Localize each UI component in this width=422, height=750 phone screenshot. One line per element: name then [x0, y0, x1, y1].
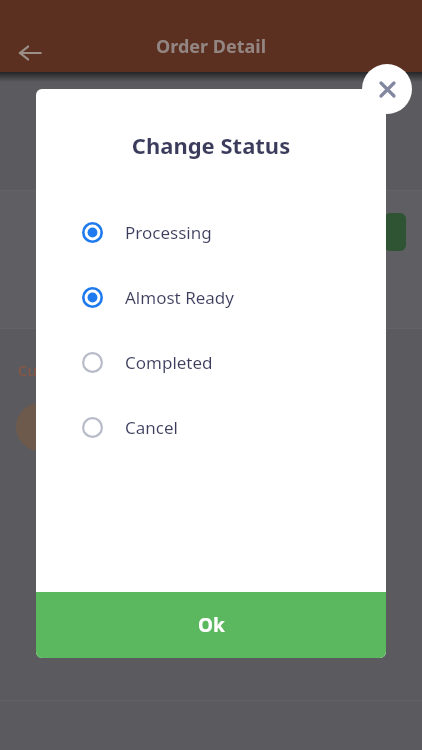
button[interactable]: Processing	[36, 200, 386, 265]
button[interactable]: Completed	[36, 330, 386, 395]
staticText: Ok	[198, 612, 225, 638]
staticText: Processing	[125, 221, 212, 244]
button[interactable]: Cancel	[36, 395, 386, 460]
staticText: Almost Ready	[125, 286, 234, 309]
staticText: Cancel	[125, 416, 178, 439]
staticText: Completed	[125, 351, 213, 374]
staticText: Change Status	[36, 130, 386, 160]
button[interactable]: Almost Ready	[36, 265, 386, 330]
staticText: Cu	[18, 360, 37, 380]
button[interactable]: Back	[10, 33, 50, 73]
button[interactable]: Ok	[36, 592, 386, 658]
button[interactable]: Close	[362, 64, 412, 114]
staticText: Order Detail	[156, 34, 267, 59]
